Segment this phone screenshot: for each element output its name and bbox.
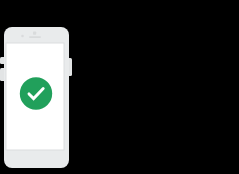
button[interactable]: Payment successful phone mockup	[0, 0, 239, 174]
